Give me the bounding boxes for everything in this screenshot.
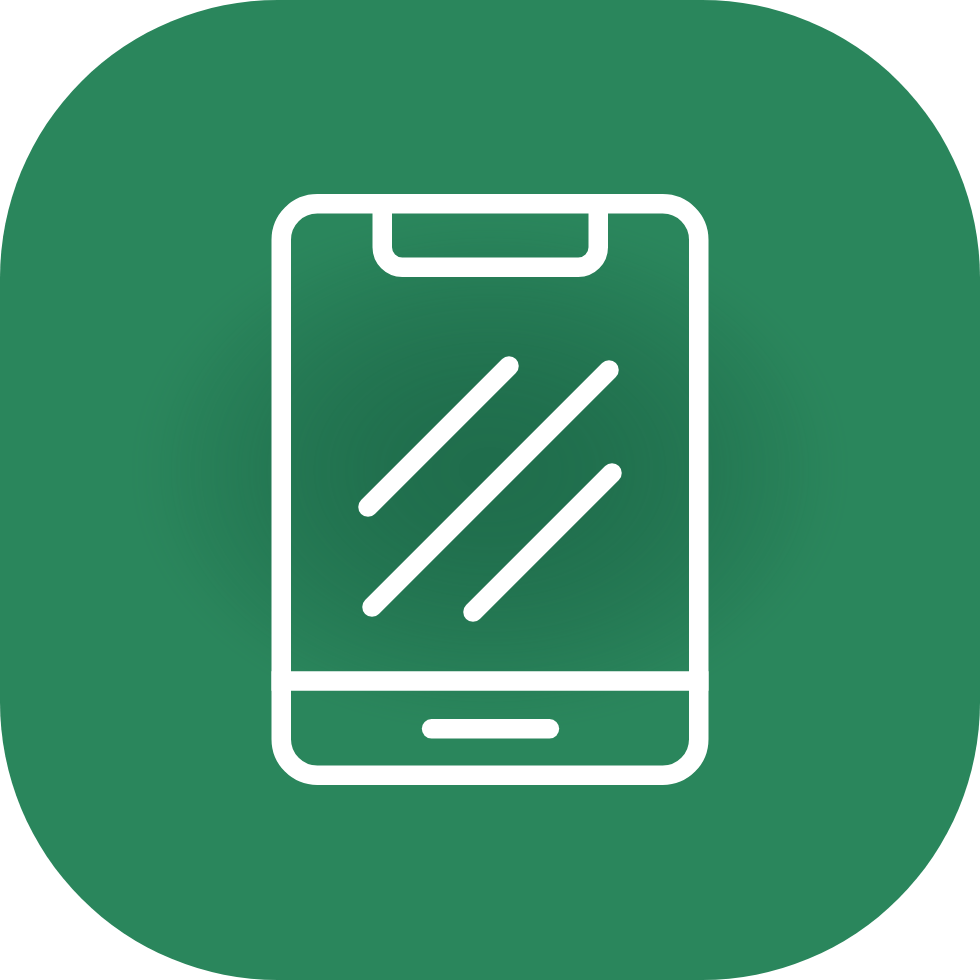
button[interactable]: Mobile device app icon xyxy=(0,0,980,980)
